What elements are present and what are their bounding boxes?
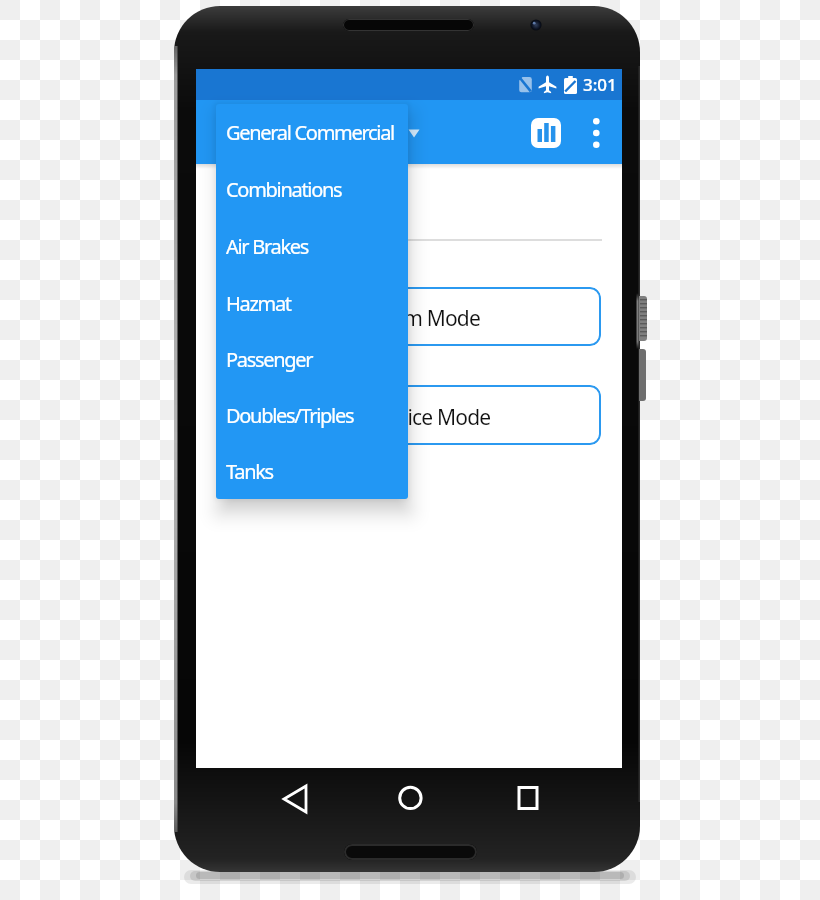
staticText: Exam Mode bbox=[371, 304, 480, 333]
button[interactable]: Doubles/Triples bbox=[216, 387, 408, 443]
staticText: Combinations bbox=[226, 176, 342, 203]
button[interactable]: General Commercial bbox=[216, 104, 408, 161]
button[interactable]: Exam Mode bbox=[216, 287, 601, 346]
button[interactable] bbox=[580, 106, 613, 158]
button[interactable] bbox=[531, 118, 561, 148]
button[interactable] bbox=[400, 118, 428, 148]
button[interactable]: Hazmat bbox=[216, 275, 408, 331]
button[interactable]: Tanks bbox=[216, 443, 408, 499]
staticText: Hazmat bbox=[226, 290, 291, 317]
button[interactable]: Passenger bbox=[216, 331, 408, 387]
button[interactable] bbox=[274, 774, 318, 822]
staticText: Air Brakes bbox=[226, 233, 309, 260]
staticText: General Commercial bbox=[226, 119, 394, 146]
staticText: Doubles/Triples bbox=[226, 402, 354, 429]
button[interactable]: Air Brakes bbox=[216, 218, 408, 275]
button[interactable]: Combinations bbox=[216, 161, 408, 218]
button[interactable]: Practice Mode bbox=[216, 385, 601, 445]
staticText: Passenger bbox=[226, 346, 313, 373]
staticText: Tanks bbox=[226, 458, 273, 485]
button[interactable] bbox=[508, 774, 552, 822]
button[interactable] bbox=[389, 774, 433, 822]
staticText: 3:01 bbox=[583, 73, 617, 96]
staticText: Practice Mode bbox=[361, 403, 491, 432]
